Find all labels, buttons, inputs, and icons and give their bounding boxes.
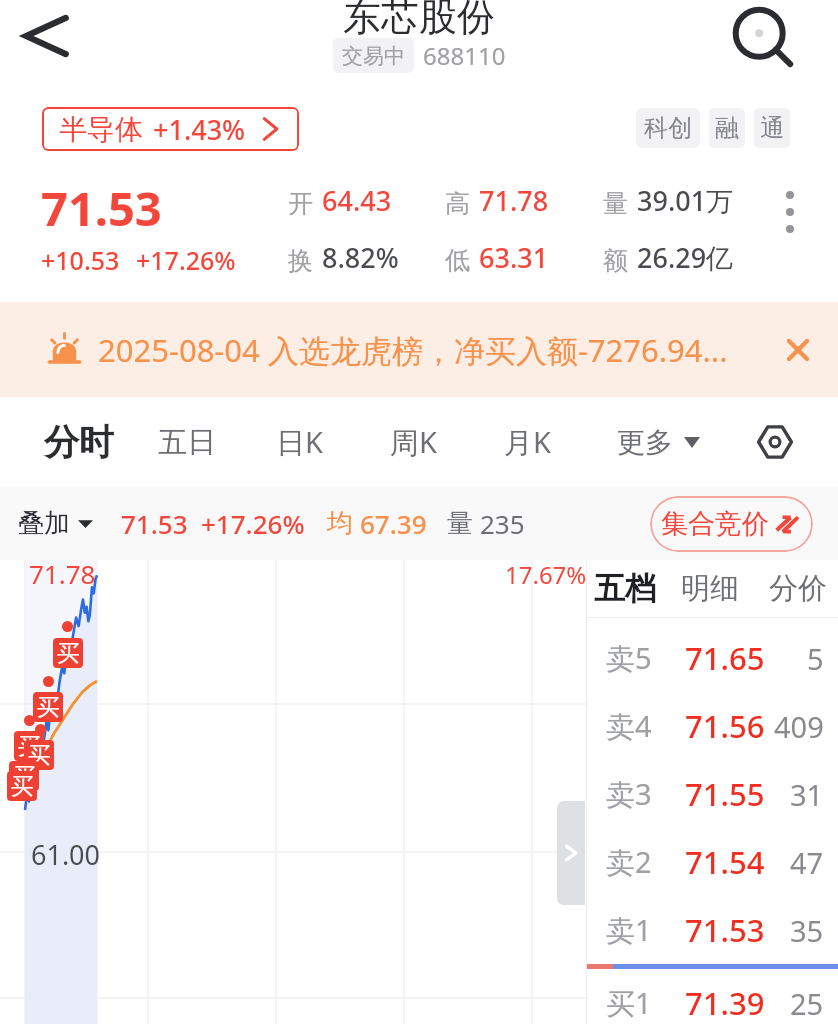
staticText: 买 <box>11 772 34 801</box>
staticText: 卖1 <box>606 910 652 950</box>
staticText: 集合竞价 <box>661 507 769 541</box>
button[interactable]: More options <box>765 187 815 237</box>
staticText: 东芯股份 <box>343 0 495 41</box>
button[interactable]: Search <box>732 6 798 72</box>
button[interactable]: 分价 <box>769 560 827 617</box>
staticText: +17.26% <box>201 506 305 541</box>
staticText: 47 <box>790 843 824 882</box>
staticText: 半导体 <box>59 112 143 147</box>
staticText: +10.53 <box>41 243 120 277</box>
staticText: 明细 <box>681 570 739 607</box>
staticText: 71.78 <box>29 556 96 591</box>
staticText: 26.29亿 <box>637 239 734 276</box>
button[interactable]: 通 <box>754 108 790 148</box>
staticText: 71.53 <box>41 176 162 240</box>
staticText: 71.65 <box>685 637 765 679</box>
staticText: 17.67% <box>505 558 587 591</box>
staticText: 分价 <box>769 570 827 607</box>
staticText: 卖2 <box>606 842 652 882</box>
staticText: 71.53 <box>121 506 188 541</box>
button[interactable]: 卖2 <box>586 828 838 896</box>
button[interactable]: 买 <box>7 771 37 801</box>
staticText: 买 <box>37 693 60 722</box>
staticText: 67.39 <box>360 506 427 541</box>
staticText: 71.55 <box>685 773 765 815</box>
staticText: 买 <box>13 762 36 791</box>
button[interactable]: 融 <box>709 108 745 148</box>
staticText: 日K <box>276 422 323 462</box>
button[interactable]: 买 <box>14 731 44 761</box>
staticText: 交易中 <box>342 43 405 69</box>
staticText: 39.01万 <box>637 182 734 219</box>
button[interactable]: 日K <box>262 410 337 474</box>
staticText: 688110 <box>423 39 506 72</box>
staticText: 235 <box>480 506 525 541</box>
staticText: 量 <box>603 188 628 219</box>
staticText: 更多 <box>617 425 673 460</box>
button[interactable]: 半导体 <box>42 107 299 151</box>
staticText: 融 <box>715 113 739 143</box>
staticText: 通 <box>760 113 784 143</box>
button[interactable]: Back <box>10 0 82 72</box>
button[interactable]: 买 <box>24 740 54 770</box>
button[interactable]: 月K <box>490 410 565 474</box>
staticText: 买1 <box>606 983 652 1023</box>
staticText: 71.53 <box>685 909 765 951</box>
button[interactable]: 买1 <box>586 969 838 1024</box>
button[interactable]: 分时 <box>30 410 128 474</box>
button[interactable]: 买 <box>53 638 83 668</box>
staticText: 71.39 <box>685 982 765 1024</box>
staticText: 五日 <box>158 424 216 461</box>
staticText: 买 <box>28 741 51 770</box>
staticText: +17.26% <box>136 243 236 277</box>
staticText: 卖5 <box>606 638 652 678</box>
staticText: 409 <box>774 707 824 746</box>
button[interactable]: 卖5 <box>586 624 838 692</box>
button[interactable]: 买 <box>9 761 39 791</box>
staticText: 买 <box>57 639 80 668</box>
button[interactable]: 卖1 <box>586 896 838 964</box>
staticText: +1.43% <box>153 111 246 148</box>
staticText: 25 <box>790 984 824 1023</box>
staticText: 5 <box>807 639 824 678</box>
button[interactable]: 2025-08-04 入选龙虎榜，净买入额-7276.94... <box>0 302 838 397</box>
button[interactable]: Close <box>776 328 820 372</box>
staticText: 买 <box>18 732 41 761</box>
button[interactable]: 明细 <box>681 560 739 617</box>
staticText: 换 <box>288 245 313 276</box>
staticText: 均 <box>327 507 353 540</box>
button[interactable]: 卖3 <box>586 760 838 828</box>
staticText: 低 <box>445 245 470 276</box>
staticText: 叠加 <box>18 507 70 540</box>
button[interactable]: 周K <box>376 410 451 474</box>
staticText: 35 <box>790 911 824 950</box>
staticText: 额 <box>603 245 628 276</box>
staticText: 卖3 <box>606 774 652 814</box>
staticText: 量 <box>447 507 473 540</box>
staticText: 63.31 <box>479 239 549 276</box>
staticText: 分时 <box>44 420 114 464</box>
button[interactable]: 叠加 <box>18 507 93 540</box>
staticText: 2025-08-04 入选龙虎榜，净买入额-7276.94... <box>98 329 728 371</box>
button[interactable]: Chart settings <box>751 418 799 466</box>
button[interactable]: 科创 <box>636 108 700 148</box>
staticText: 月K <box>504 422 551 462</box>
staticText: 64.43 <box>322 182 392 219</box>
staticText: 五档 <box>594 569 656 608</box>
button[interactable]: 买 <box>33 692 63 722</box>
staticText: 61.00 <box>31 836 101 873</box>
button[interactable]: 集合竞价 <box>650 496 813 552</box>
button[interactable]: 更多 <box>610 410 707 474</box>
button[interactable]: 卖4 <box>586 692 838 760</box>
button[interactable]: Expand chart <box>557 801 585 905</box>
staticText: 71.78 <box>479 182 549 219</box>
staticText: 周K <box>390 422 437 462</box>
staticText: 31 <box>790 775 824 814</box>
button[interactable]: 五日 <box>144 410 230 474</box>
staticText: 高 <box>445 188 470 219</box>
staticText: 71.56 <box>685 705 765 747</box>
staticText: 71.54 <box>685 841 765 883</box>
staticText: 科创 <box>644 113 692 143</box>
staticText: 卖4 <box>606 706 652 746</box>
button[interactable]: 五档 <box>594 560 656 617</box>
